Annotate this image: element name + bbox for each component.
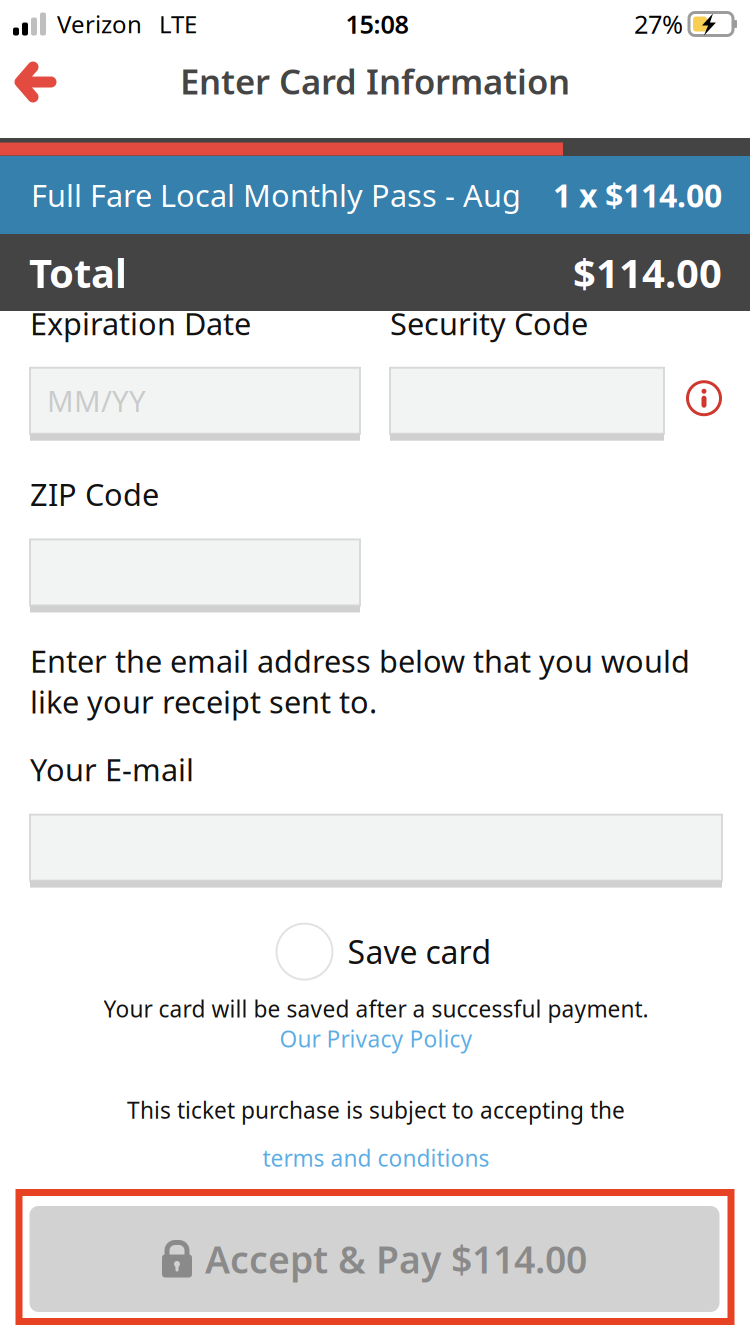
staticText: MM/YY <box>47 381 146 420</box>
staticText: Enter Card Information <box>180 58 570 104</box>
button[interactable]: Save card <box>268 924 483 980</box>
staticText: 1 x $114.00 <box>553 174 722 216</box>
staticText: This ticket purchase is subject to accep… <box>127 1095 625 1125</box>
staticText: Enter the email address below that you w… <box>30 640 690 681</box>
staticText: 27% <box>634 7 683 41</box>
staticText: ZIP Code <box>30 474 159 514</box>
staticText: $114.00 <box>573 246 722 299</box>
staticText: Save card <box>347 930 491 973</box>
staticText: Accept & Pay $114.00 <box>205 1234 587 1284</box>
staticText: 15:08 <box>345 7 408 41</box>
staticText: Expiration Date <box>30 303 251 344</box>
staticText: Total <box>29 246 127 299</box>
staticText: Your card will be saved after a successf… <box>103 994 648 1024</box>
staticText: Full Fare Local Monthly Pass - Aug <box>31 175 521 215</box>
staticText: Security Code <box>390 303 588 344</box>
staticText: like your receipt sent to. <box>30 681 377 722</box>
staticText: Our Privacy Policy <box>279 1024 472 1054</box>
staticText: LTE <box>159 8 197 40</box>
button[interactable]: Our Privacy Policy <box>279 1024 472 1054</box>
button[interactable]: Accept & Pay $114.00 <box>15 1189 734 1325</box>
button[interactable]: Back <box>0 48 83 110</box>
staticText: Your E-mail <box>30 749 194 790</box>
staticText: Verizon <box>57 8 142 40</box>
button[interactable]: terms and conditions <box>262 1143 489 1173</box>
staticText: terms and conditions <box>262 1143 489 1173</box>
